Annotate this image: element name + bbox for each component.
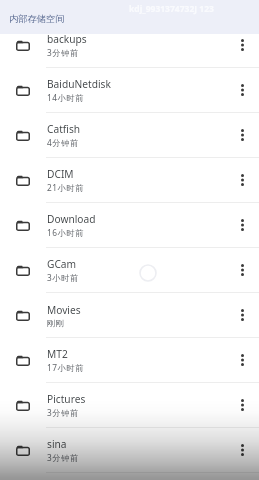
staticText: 刚刚 — [47, 318, 65, 328]
button[interactable]: Download — [0, 203, 259, 247]
staticText: 17小时前 — [47, 362, 85, 373]
staticText: 3小时前 — [47, 272, 79, 283]
button[interactable]: More options — [225, 158, 259, 202]
button[interactable]: More options — [225, 113, 259, 157]
button[interactable]: More options — [225, 248, 259, 292]
button[interactable]: More options — [225, 23, 259, 67]
button[interactable]: BaiduNetdisk — [0, 68, 259, 112]
staticText: DCIM — [47, 167, 74, 181]
button[interactable]: DCIM — [0, 158, 259, 202]
button[interactable]: More options — [225, 203, 259, 247]
staticText: kdj_9931374732J 123 — [129, 3, 214, 15]
staticText: GCam — [47, 257, 77, 271]
button[interactable]: MT2 — [0, 338, 259, 382]
staticText: 3分钟前 — [47, 47, 79, 58]
button[interactable]: Catfish — [0, 113, 259, 157]
staticText: Pictures — [47, 392, 86, 406]
button[interactable]: GCam — [0, 248, 259, 292]
staticText: 4分钟前 — [47, 137, 79, 148]
staticText: 16小时前 — [47, 227, 85, 238]
staticText: Download — [47, 212, 96, 226]
button[interactable]: backups — [0, 23, 259, 67]
staticText: MT2 — [47, 347, 68, 361]
staticText: sina — [47, 437, 67, 451]
staticText: Catfish — [47, 122, 81, 136]
staticText: backups — [47, 32, 87, 46]
staticText: 3分钟前 — [47, 407, 79, 418]
button[interactable]: Movies — [0, 293, 259, 337]
button[interactable]: More options — [225, 68, 259, 112]
button[interactable]: More options — [225, 383, 259, 427]
button[interactable]: More options — [225, 293, 259, 337]
button[interactable]: Pictures — [0, 383, 259, 427]
staticText: 内部存储空间 — [9, 13, 65, 25]
button[interactable]: More options — [225, 428, 259, 472]
staticText: BaiduNetdisk — [47, 77, 111, 91]
staticText: 3分钟前 — [47, 452, 79, 463]
button[interactable]: sina — [0, 428, 259, 472]
staticText: 21小时前 — [47, 182, 85, 193]
staticText: 14小时前 — [47, 92, 85, 103]
button[interactable]: More options — [225, 338, 259, 382]
staticText: Movies — [47, 303, 81, 317]
